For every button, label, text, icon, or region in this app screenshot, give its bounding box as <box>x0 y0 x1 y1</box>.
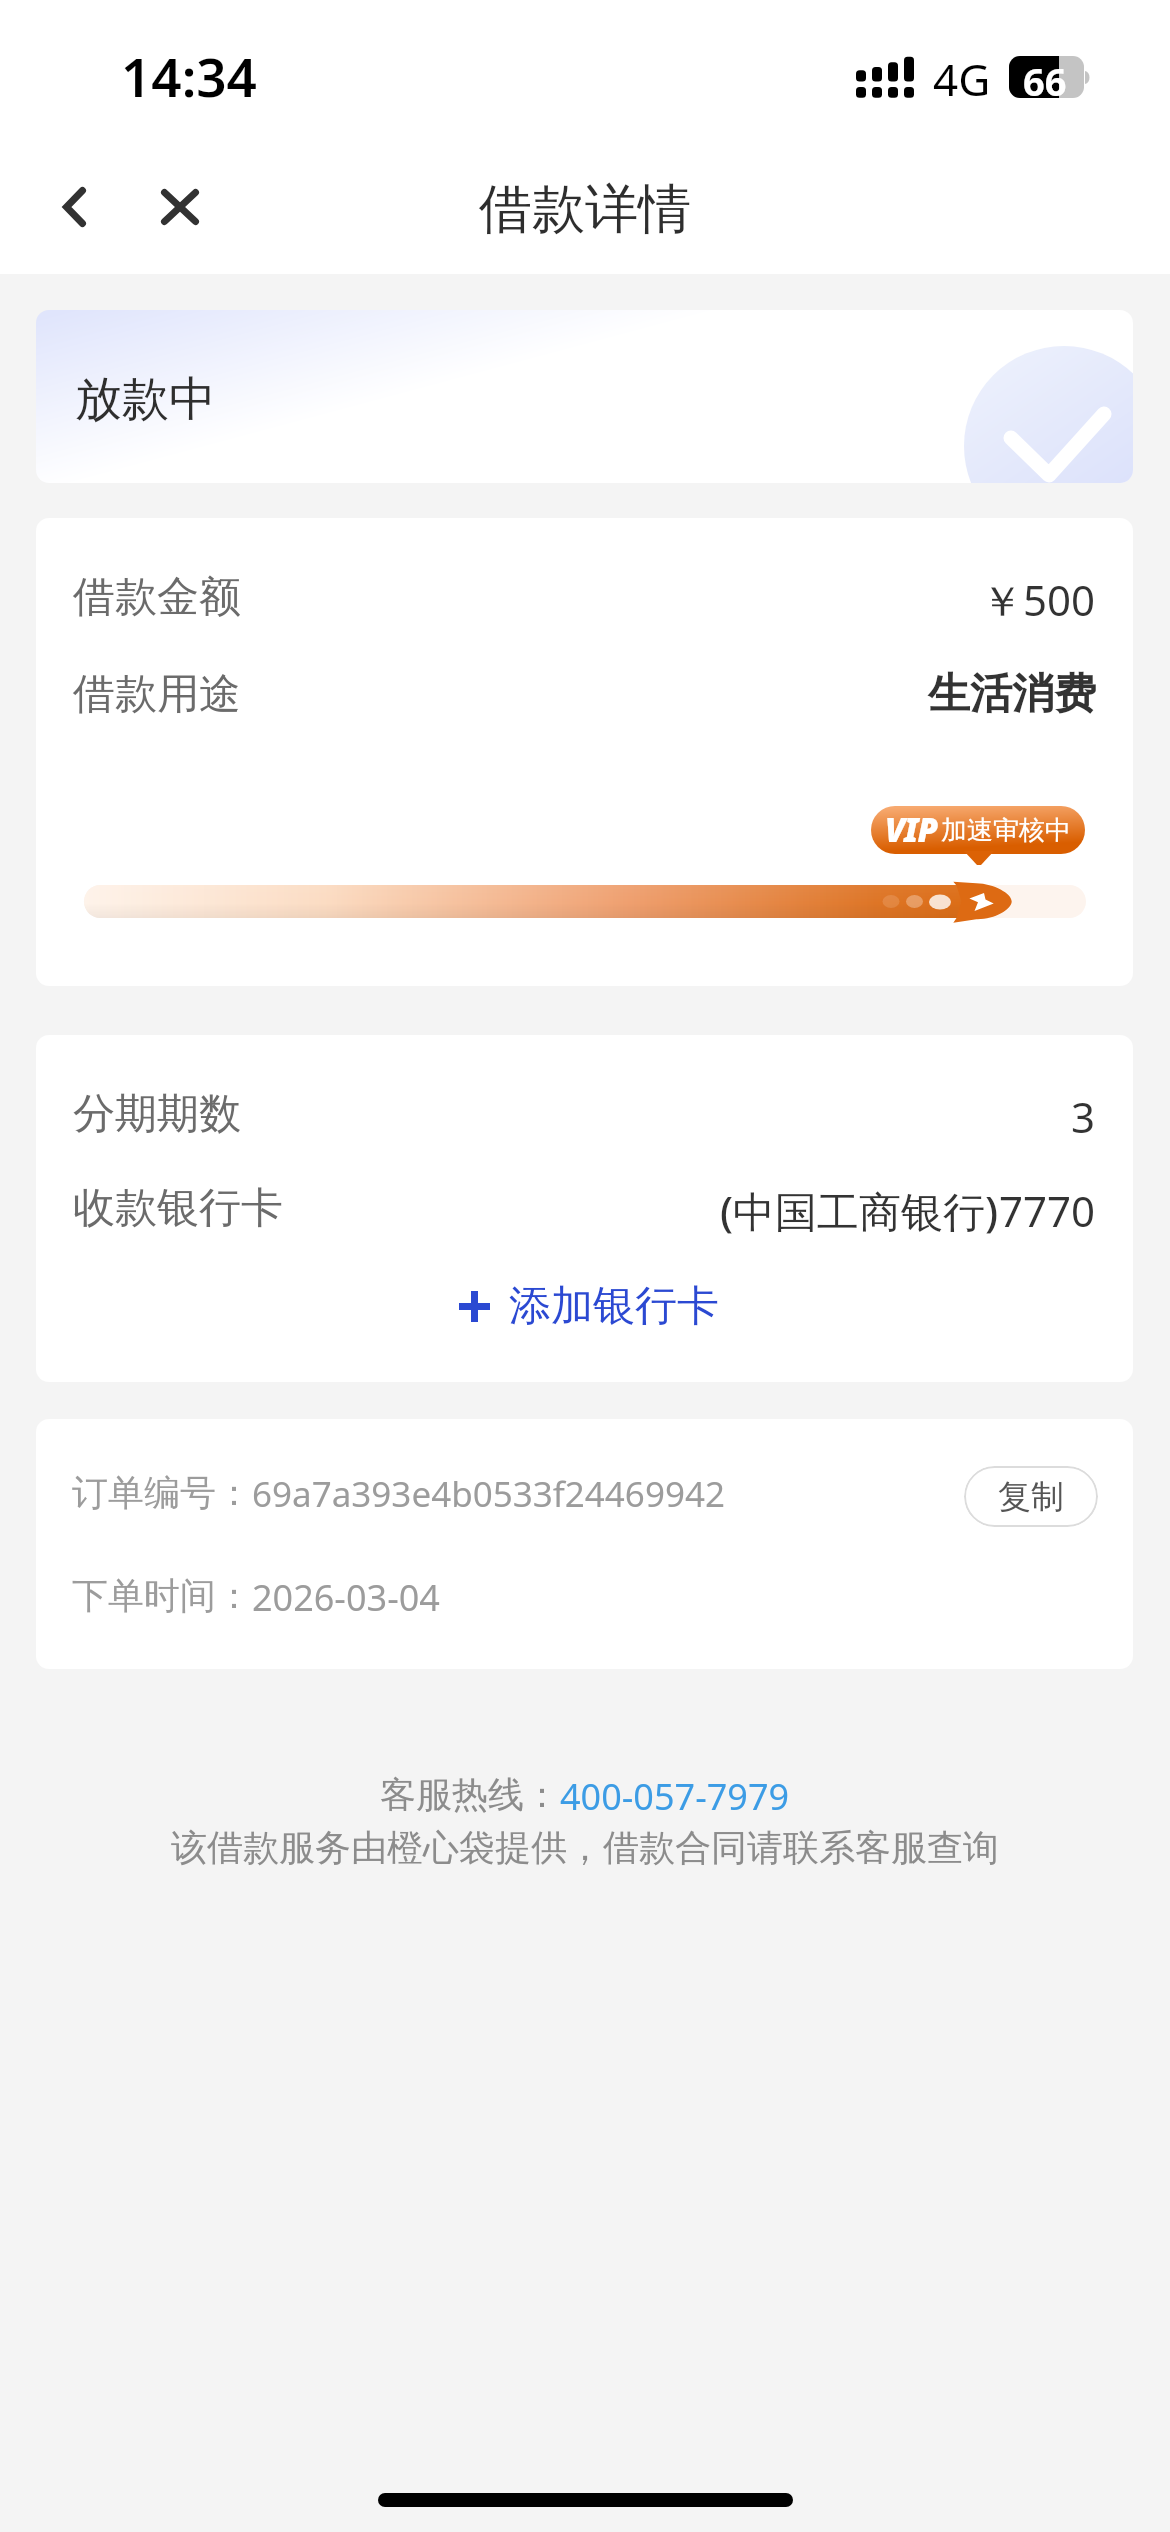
staticText: ￥500 <box>981 571 1096 628</box>
staticText: 复制 <box>998 1476 1064 1518</box>
staticText: 加速审核中 <box>941 814 1071 847</box>
staticText: VIP <box>885 807 937 852</box>
staticText: 7770 <box>999 1182 1096 1239</box>
staticText: 分期期数 <box>73 1088 241 1141</box>
staticText: 借款金额 <box>73 571 241 624</box>
staticText: 66 <box>1023 56 1067 97</box>
staticText: 放款中 <box>75 370 216 429</box>
staticText: 借款用途 <box>73 668 241 721</box>
staticText: 4G <box>933 49 991 109</box>
staticText: 2026-03-04 <box>252 1573 440 1622</box>
staticText: 订单编号： <box>72 1470 252 1515</box>
button[interactable]: Back <box>29 162 119 252</box>
staticText: 借款详情 <box>479 176 691 243</box>
staticText: 添加银行卡 <box>509 1280 719 1333</box>
staticText: 69a7a393e4b0533f24469942 <box>252 1470 725 1518</box>
staticText: 3 <box>1071 1088 1096 1145</box>
staticText: 14:34 <box>121 40 257 112</box>
button[interactable]: 复制 <box>964 1466 1098 1527</box>
staticText: 客服热线： <box>380 1772 560 1817</box>
button[interactable]: Close <box>135 162 225 252</box>
staticText: 生活消费 <box>928 668 1096 721</box>
button[interactable]: 400-057-7979 <box>560 1772 790 1821</box>
button[interactable]: 添加银行卡 <box>40 1274 1133 1338</box>
staticText: 下单时间： <box>72 1573 252 1618</box>
staticText: 该借款服务由橙心袋提供，借款合同请联系客服查询 <box>171 1825 999 1870</box>
staticText: (中国工商银行) <box>720 1182 999 1239</box>
staticText: 收款银行卡 <box>73 1182 283 1235</box>
